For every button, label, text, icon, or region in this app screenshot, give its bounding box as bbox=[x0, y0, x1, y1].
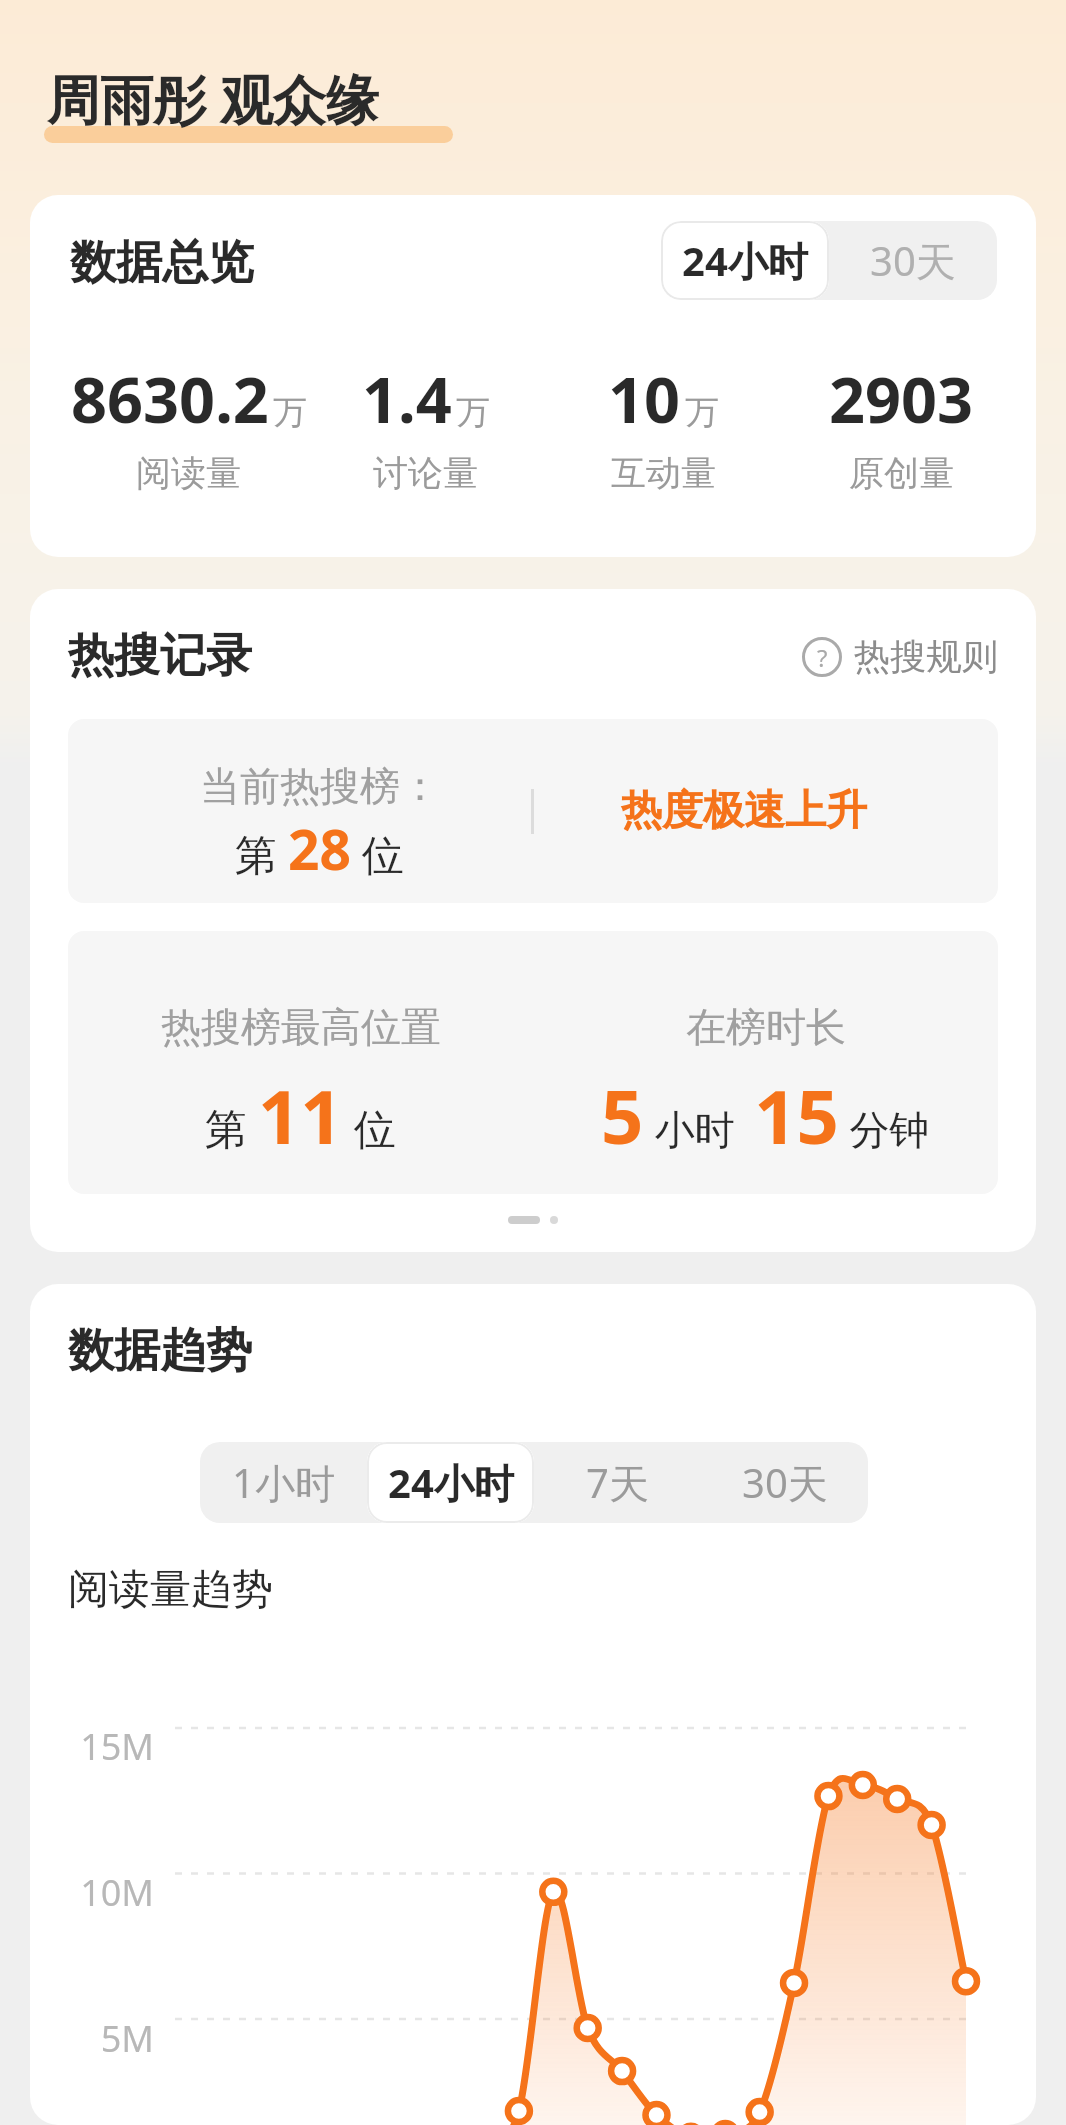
staticText: 第 bbox=[205, 1099, 258, 1156]
button[interactable]: ? bbox=[802, 634, 998, 679]
staticText: 15M bbox=[30, 1722, 154, 1771]
staticText: 1.4 bbox=[362, 356, 452, 442]
button[interactable]: 24小时 bbox=[661, 221, 829, 300]
staticText: 数据总览 bbox=[70, 234, 254, 292]
staticText: 热度极速上升 bbox=[621, 785, 867, 837]
staticText: 2903 bbox=[829, 356, 974, 442]
staticText: 小时 bbox=[644, 1101, 735, 1156]
staticText: 8630.2 bbox=[71, 356, 269, 442]
staticText: 28 bbox=[288, 811, 351, 886]
staticText: 万 bbox=[273, 391, 307, 434]
staticText: ? bbox=[817, 641, 828, 674]
staticText: 5 bbox=[601, 1065, 644, 1166]
staticText: 阅读量 bbox=[136, 451, 241, 495]
staticText: 分钟 bbox=[839, 1101, 930, 1156]
staticText: 7天 bbox=[586, 1455, 649, 1510]
staticText: 原创量 bbox=[849, 451, 954, 495]
staticText: 24小时 bbox=[388, 1455, 514, 1510]
button[interactable]: 24小时 bbox=[367, 1442, 534, 1523]
staticText: 在榜时长 bbox=[686, 1002, 846, 1052]
staticText: 万 bbox=[456, 391, 490, 434]
staticText: 位 bbox=[351, 825, 404, 882]
staticText: 第 bbox=[235, 825, 288, 882]
staticText: 万 bbox=[685, 391, 719, 434]
staticText: 15 bbox=[735, 1065, 839, 1166]
button[interactable]: 7天 bbox=[534, 1442, 701, 1523]
staticText: 阅读量趋势 bbox=[68, 1564, 273, 1616]
staticText: 1小时 bbox=[232, 1455, 335, 1510]
staticText: 当前热搜榜： bbox=[200, 761, 440, 811]
staticText: 周雨彤 观众缘 bbox=[47, 62, 379, 134]
staticText: 30天 bbox=[742, 1455, 828, 1510]
staticText: 热搜榜最高位置 bbox=[161, 1002, 441, 1052]
button[interactable]: 30天 bbox=[829, 221, 997, 300]
staticText: 热搜规则 bbox=[854, 634, 998, 679]
staticText: 数据趋势 bbox=[68, 1322, 252, 1380]
staticText: 讨论量 bbox=[373, 451, 478, 495]
staticText: 30天 bbox=[870, 233, 956, 288]
staticText: 互动量 bbox=[611, 451, 716, 495]
staticText: 10M bbox=[30, 1868, 154, 1917]
staticText: 5M bbox=[30, 2014, 154, 2063]
staticText: 24小时 bbox=[682, 233, 808, 288]
staticText: 11 bbox=[258, 1065, 343, 1166]
staticText: 位 bbox=[343, 1099, 396, 1156]
button[interactable]: 1小时 bbox=[200, 1442, 367, 1523]
staticText: 10 bbox=[608, 356, 681, 442]
button[interactable]: 30天 bbox=[701, 1442, 868, 1523]
staticText: 热搜记录 bbox=[68, 627, 252, 685]
